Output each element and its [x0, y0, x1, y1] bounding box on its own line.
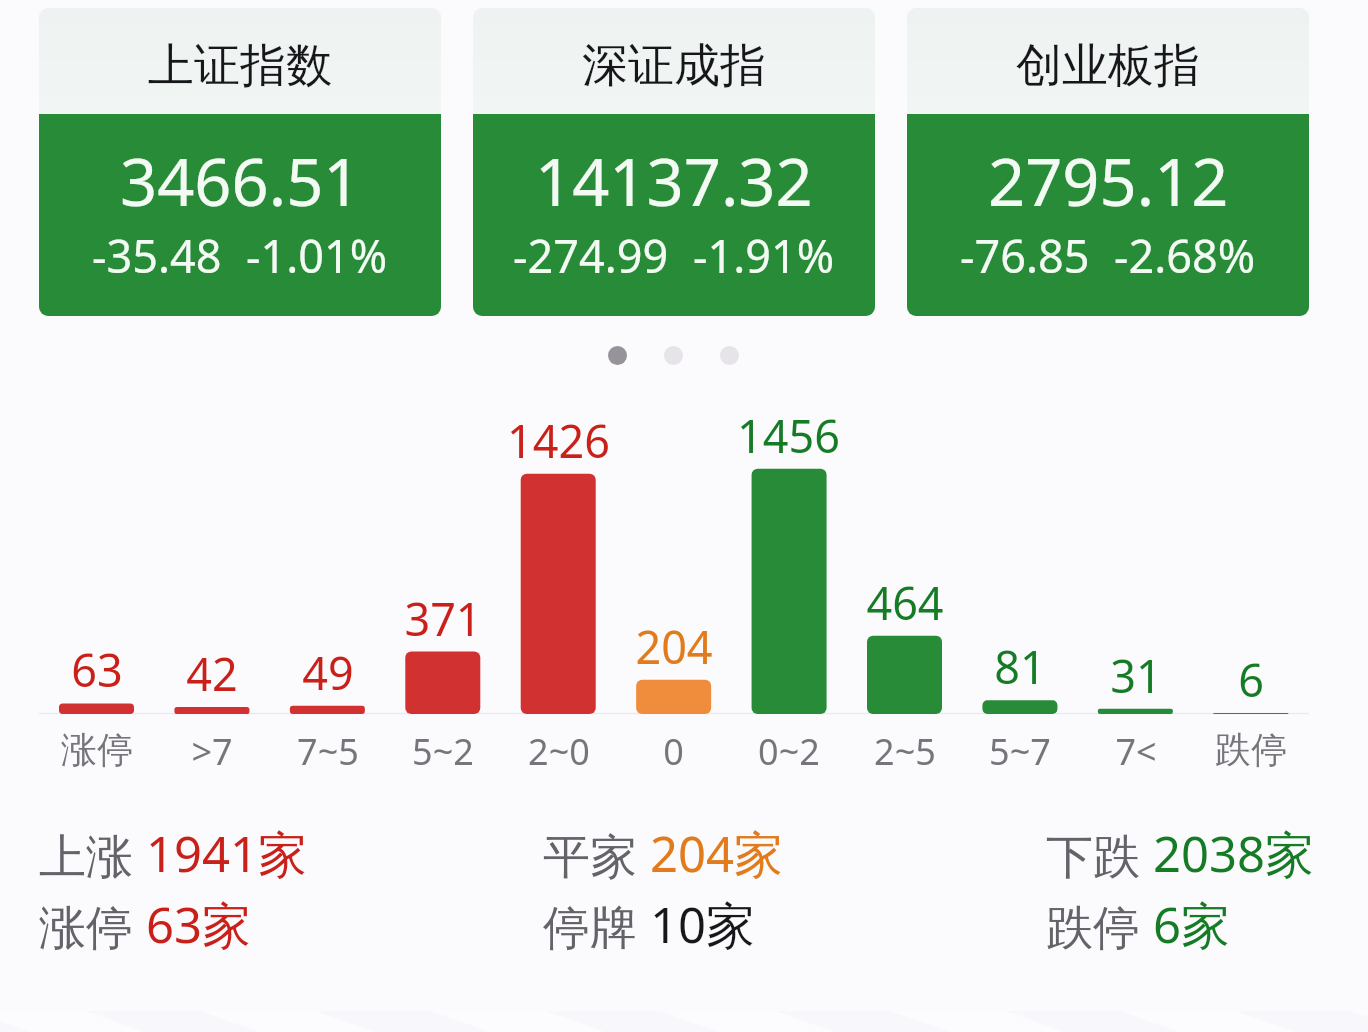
staticText: 63: [71, 639, 123, 700]
staticText: 42: [186, 643, 238, 704]
button[interactable]: 下跌: [1046, 820, 1315, 887]
staticText: 371: [404, 588, 482, 649]
button[interactable]: 上涨: [39, 820, 308, 887]
staticText: 5~7: [989, 727, 1051, 776]
button[interactable]: 2~5 464: [847, 400, 962, 772]
staticText: 464: [866, 572, 944, 633]
staticText: -2.68%: [1114, 225, 1256, 286]
staticText: 10家: [650, 891, 756, 958]
staticText: 6: [1238, 649, 1264, 710]
staticText: 7~5: [297, 727, 359, 776]
staticText: 14137.32: [535, 137, 813, 226]
staticText: 2~0: [528, 727, 590, 776]
button[interactable]: Page 1: [608, 346, 627, 365]
button[interactable]: 2~0 1426: [501, 400, 616, 772]
button[interactable]: 0 204: [616, 400, 731, 772]
button[interactable]: 跌停 6: [1193, 400, 1308, 772]
staticText: 1941家: [146, 820, 308, 887]
button[interactable]: 涨停: [39, 891, 252, 958]
staticText: 1456: [737, 405, 840, 466]
button[interactable]: 停牌: [543, 891, 756, 958]
button[interactable]: 创业板指: [907, 8, 1309, 316]
staticText: 0: [663, 727, 684, 776]
staticText: -76.85: [960, 225, 1090, 286]
staticText: 3466.51: [120, 137, 361, 226]
button[interactable]: Page 2: [664, 346, 683, 365]
staticText: -274.99: [513, 225, 669, 286]
staticText: 5~2: [412, 727, 474, 776]
staticText: 0~2: [758, 727, 820, 776]
button[interactable]: 平家: [543, 820, 784, 887]
staticText: -1.01%: [246, 225, 388, 286]
staticText: 2038家: [1153, 820, 1315, 887]
staticText: 下跌: [1046, 823, 1153, 887]
staticText: 停牌: [543, 894, 650, 958]
button[interactable]: 深证成指: [473, 8, 875, 316]
button[interactable]: 5~7 81: [962, 400, 1077, 772]
staticText: 81: [994, 636, 1046, 697]
button[interactable]: 跌停: [1046, 891, 1231, 958]
staticText: 创业板指: [1016, 37, 1200, 95]
staticText: 49: [302, 642, 354, 703]
staticText: 7<: [1115, 727, 1157, 776]
button[interactable]: 涨停 63: [39, 400, 154, 772]
staticText: 上证指数: [148, 37, 332, 95]
staticText: 平家: [543, 823, 650, 887]
staticText: >7: [191, 727, 233, 776]
button[interactable]: 7< 31: [1078, 400, 1193, 772]
staticText: 2~5: [874, 727, 936, 776]
staticText: 2795.12: [988, 137, 1229, 226]
staticText: -35.48: [92, 225, 222, 286]
staticText: 204: [635, 616, 713, 677]
staticText: 上涨: [39, 823, 146, 887]
staticText: -1.91%: [693, 225, 835, 286]
button[interactable]: >7 42: [154, 400, 269, 772]
button[interactable]: 5~2 371: [385, 400, 500, 772]
staticText: 跌停: [1046, 894, 1153, 958]
button[interactable]: 上证指数: [39, 8, 441, 316]
staticText: 6家: [1153, 891, 1231, 958]
button[interactable]: 0~2 1456: [731, 400, 846, 772]
staticText: 31: [1110, 645, 1162, 706]
staticText: 跌停: [1215, 727, 1287, 772]
staticText: 204家: [650, 820, 784, 887]
staticText: 深证成指: [582, 37, 766, 95]
staticText: 63家: [146, 891, 252, 958]
staticText: 涨停: [61, 727, 133, 772]
button[interactable]: Page 3: [720, 346, 739, 365]
staticText: 1426: [507, 410, 610, 471]
button[interactable]: 7~5 49: [270, 400, 385, 772]
staticText: 涨停: [39, 894, 146, 958]
